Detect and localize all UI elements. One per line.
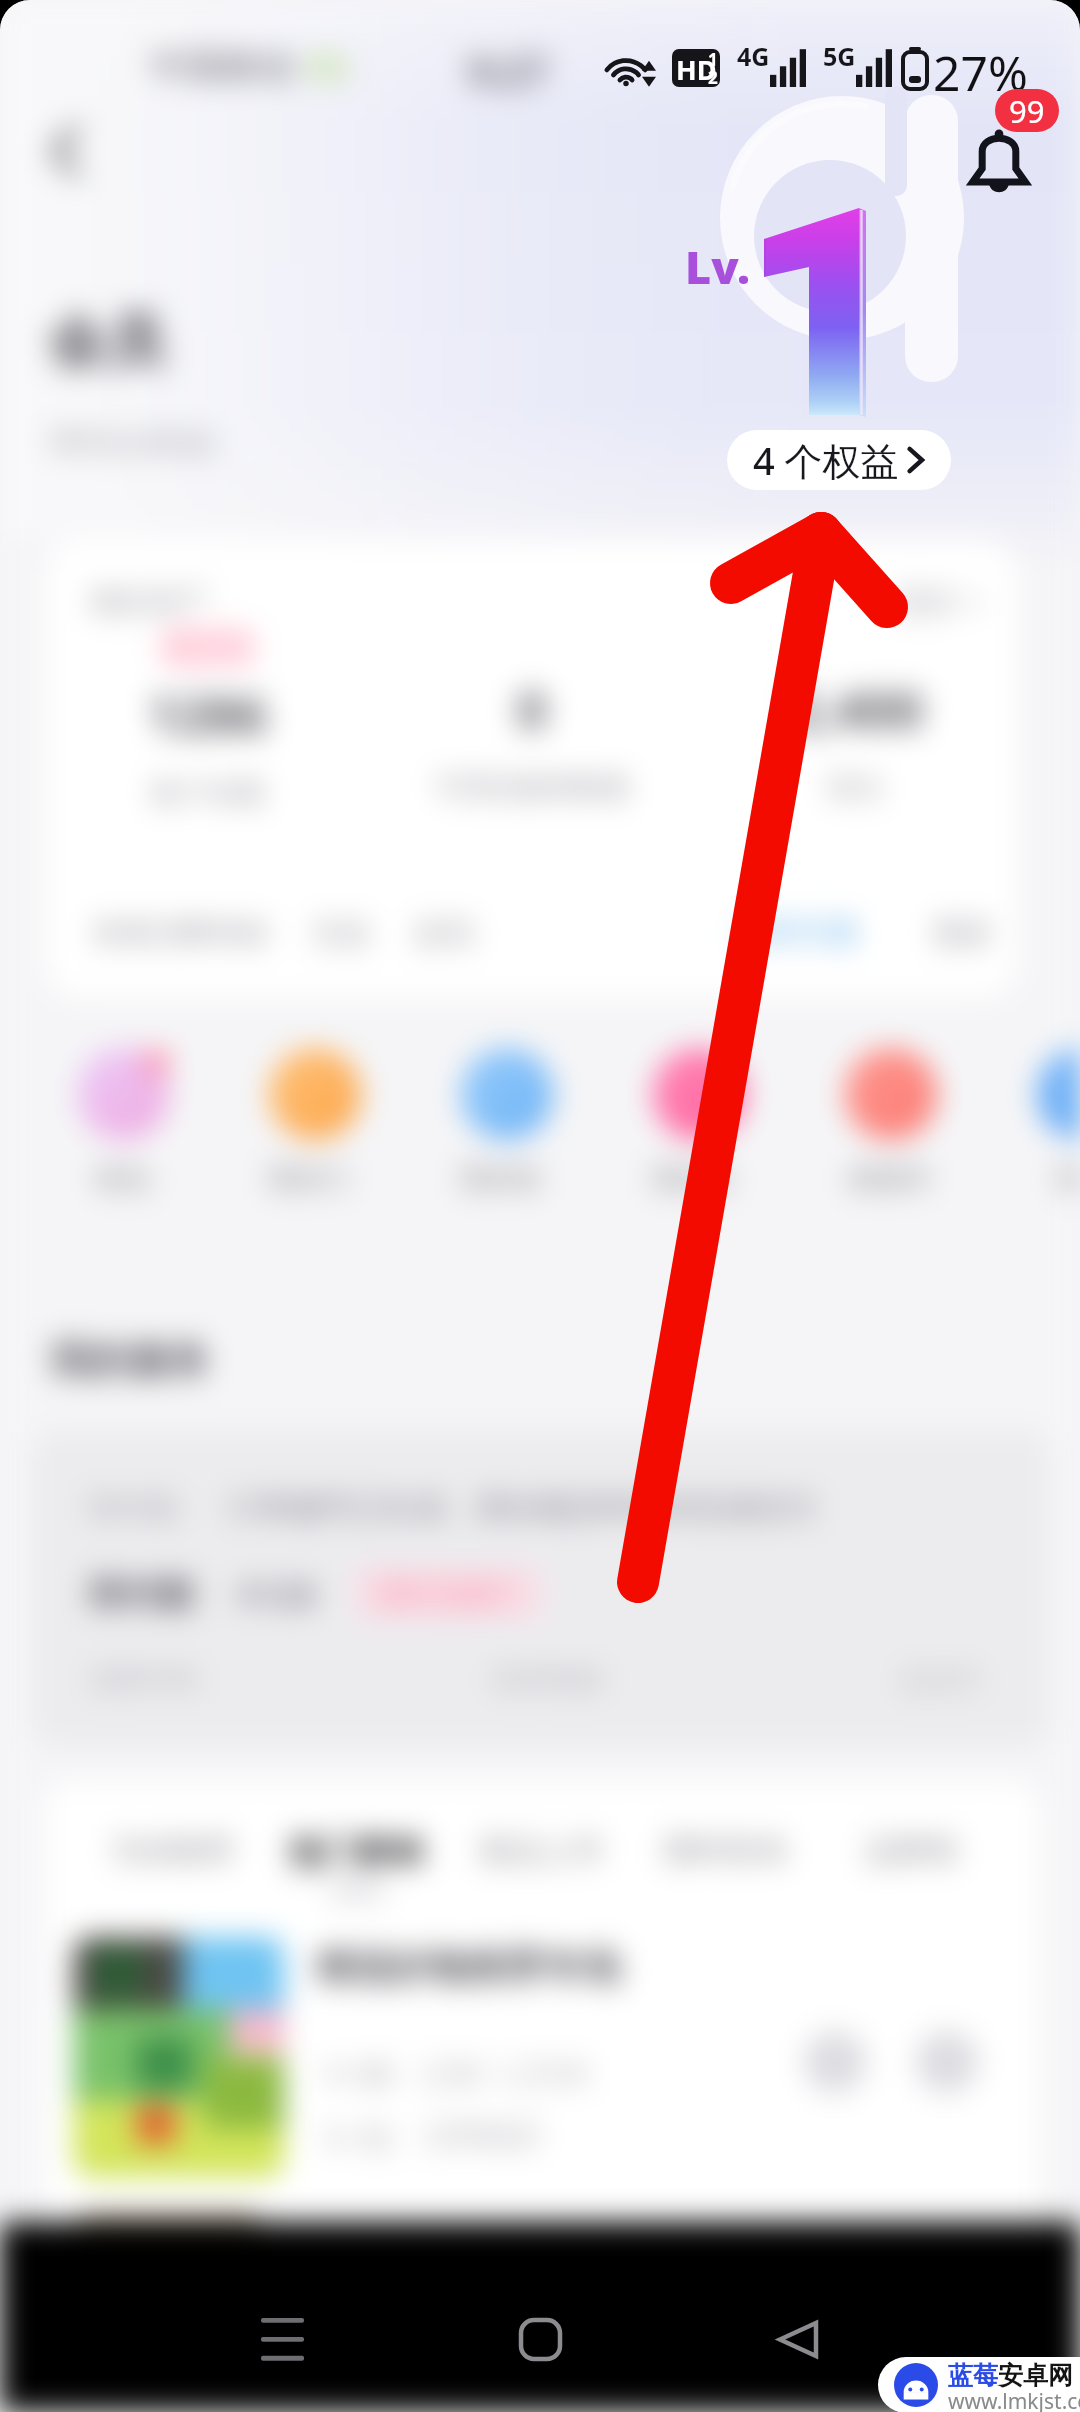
staticText: 待付款 xyxy=(88,1571,196,1616)
staticText: 新品上市 xyxy=(480,1831,604,1870)
staticText: 我的收藏 xyxy=(459,1161,554,1196)
staticText: 限时优惠中 xyxy=(378,1576,518,1611)
staticText: 4G xyxy=(737,39,770,73)
staticText: 9:27 xyxy=(468,44,548,98)
staticText: 27% xyxy=(933,40,1028,96)
staticText: 可用优惠券数量 xyxy=(434,770,630,805)
button[interactable]: 我的订单 xyxy=(267,1046,362,1196)
staticText: 5G xyxy=(306,45,348,89)
button[interactable]: Home xyxy=(470,2275,610,2403)
button[interactable]: 4 个权益 xyxy=(727,430,951,490)
staticText: 2 xyxy=(708,66,718,87)
staticText: +5.20 xyxy=(178,632,237,663)
button[interactable]: 购物车 xyxy=(843,1046,938,1196)
staticText: 积分 xyxy=(828,770,884,805)
staticText: 我的订单 xyxy=(267,1161,362,1196)
button[interactable]: 更多 xyxy=(1035,1046,1080,1196)
staticText: 立即开通 xyxy=(737,914,857,952)
staticText: 提现 xyxy=(415,915,473,952)
button[interactable]: Back xyxy=(728,2275,868,2403)
staticText: 订单编号已生成，请在规定时间内完成支付 xyxy=(227,1488,816,1527)
staticText: 5G xyxy=(823,39,856,73)
staticText: Lv. xyxy=(685,236,750,297)
staticText: 更多 xyxy=(933,914,993,952)
staticText: 好物推荐第二条 xyxy=(316,2219,582,2267)
staticText: 会员 xyxy=(48,305,164,378)
staticText: 购物车 xyxy=(849,1161,933,1196)
staticText: 2,400 xyxy=(789,673,923,744)
staticText: 99 xyxy=(1009,90,1045,132)
staticText: 更多 xyxy=(895,583,955,621)
staticText: 1 xyxy=(708,49,718,71)
button[interactable]: 我的足迹 xyxy=(651,1046,746,1196)
staticText: 账户余额 xyxy=(152,775,264,810)
button[interactable]: +5.20 xyxy=(45,629,370,810)
staticText: 充值 xyxy=(311,915,369,952)
button[interactable]: 2,400 xyxy=(694,629,1018,805)
staticText: 蓝莓 xyxy=(948,2360,998,2391)
staticText: 限时秒杀 xyxy=(665,1831,789,1870)
button[interactable]: 钱包 xyxy=(75,1046,170,1196)
staticText: 品牌馆 xyxy=(865,1831,958,1870)
staticText: 钱包 xyxy=(95,1161,151,1196)
staticText: 精选好物推荐专场 xyxy=(316,1943,620,1991)
staticText: 我的足迹 xyxy=(651,1161,746,1196)
staticText: 立即购买 xyxy=(421,2117,541,2155)
staticText: ￥ 68 xyxy=(320,2053,393,2094)
staticText: 为你推荐 xyxy=(110,1831,234,1870)
staticText: 1286 xyxy=(148,678,267,749)
staticText: HD xyxy=(676,51,717,87)
button[interactable]: 待付款 xyxy=(32,1430,1050,1748)
staticText: 安卓网 xyxy=(998,2360,1073,2391)
staticText: 热门榜单 xyxy=(289,1831,425,1874)
button[interactable]: 我的收藏 xyxy=(459,1046,554,1196)
staticText: ¥128 xyxy=(238,1571,316,1617)
staticText: www.lmkjst.com xyxy=(948,2387,1080,2412)
staticText: 0 xyxy=(517,673,547,744)
staticText: 4 个权益 xyxy=(753,434,899,486)
button[interactable]: 我的资产 xyxy=(45,539,1018,998)
button[interactable]: 更多 xyxy=(895,583,983,621)
button[interactable]: Notifications xyxy=(952,86,1056,190)
staticText: 我的服务 xyxy=(50,1335,210,1385)
staticText: 中国移动 xyxy=(150,44,294,89)
button[interactable]: Recent apps xyxy=(212,2275,352,2403)
button[interactable]: 0 xyxy=(370,629,694,805)
staticText: 我的资产 xyxy=(89,583,209,621)
staticText: 查看消费明细 xyxy=(93,915,267,952)
